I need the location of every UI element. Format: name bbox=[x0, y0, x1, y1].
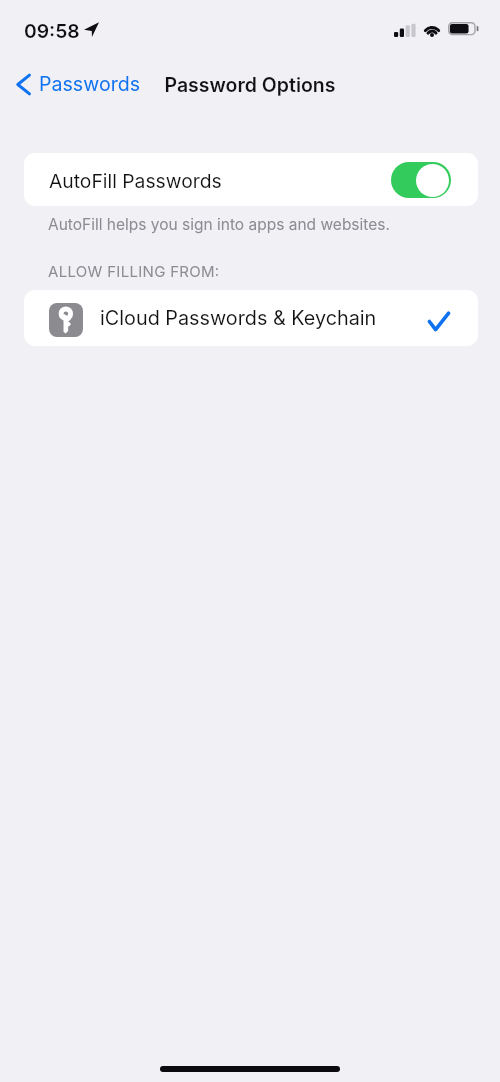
staticText: 09:58 bbox=[24, 19, 80, 42]
staticText: ALLOW FILLING FROM: bbox=[48, 262, 220, 280]
staticText: iCloud Passwords & Keychain bbox=[100, 306, 377, 330]
button[interactable]: AutoFill Passwords toggle bbox=[391, 162, 451, 198]
staticText: Passwords bbox=[39, 72, 141, 96]
other: Selected bbox=[429, 312, 449, 331]
button[interactable]: iCloud Passwords & Keychain bbox=[24, 290, 478, 346]
other: Location in use bbox=[84, 22, 99, 37]
button[interactable]: AutoFill Passwords bbox=[24, 153, 478, 206]
button[interactable]: Passwords bbox=[16, 70, 141, 98]
staticText: Password Options bbox=[0, 73, 500, 97]
staticText: AutoFill helps you sign into apps and we… bbox=[48, 215, 390, 234]
staticText: AutoFill Passwords bbox=[49, 169, 222, 192]
